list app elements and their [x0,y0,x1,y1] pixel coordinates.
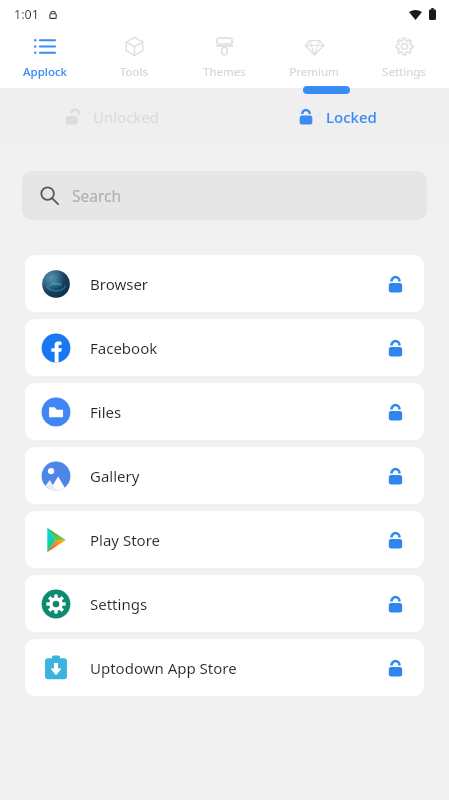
button[interactable]: Files [25,383,424,440]
staticText: Settings [90,594,382,614]
staticText: Play Store [90,530,382,550]
staticText: Browser [90,274,382,294]
staticText: Themes [203,64,246,80]
staticText: Facebook [90,338,382,358]
button[interactable]: Premium [269,28,359,88]
staticText: 1:01 [14,6,39,23]
button[interactable]: Play Store [25,511,424,568]
button[interactable]: Locked [382,655,408,681]
button[interactable]: Locked [382,271,408,297]
other: Search [40,186,59,205]
staticText: Search [72,185,122,206]
button[interactable]: Themes [179,28,269,88]
button[interactable]: Locked [382,591,408,617]
staticText: Unlocked [93,107,160,127]
button[interactable]: Gallery [25,447,424,504]
staticText: Files [90,402,382,422]
button[interactable]: Locked [382,463,408,489]
button[interactable]: Locked [382,527,408,553]
button[interactable]: Locked [382,335,408,361]
button[interactable]: Locked [224,88,449,145]
staticText: Premium [289,64,339,80]
button[interactable]: Uptodown App Store [25,639,424,696]
button[interactable]: Locked [382,399,408,425]
staticText: Tools [120,64,148,80]
staticText: Locked [326,107,377,127]
button[interactable]: Search [22,171,427,220]
button[interactable]: Applock [0,28,89,88]
staticText: Uptodown App Store [90,658,382,678]
staticText: Gallery [90,466,382,486]
button[interactable]: Facebook [25,319,424,376]
staticText: Applock [23,64,67,80]
button[interactable]: Settings [25,575,424,632]
staticText: Settings [382,64,426,80]
button[interactable]: Settings [359,28,449,88]
button[interactable]: Tools [89,28,179,88]
button[interactable]: Browser [25,255,424,312]
